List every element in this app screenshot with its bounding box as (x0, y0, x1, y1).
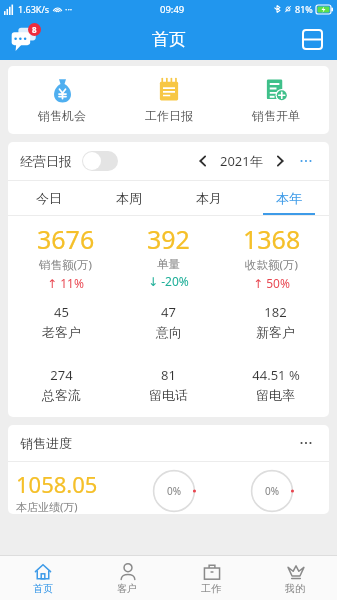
staticText: 销售机会 (38, 108, 86, 123)
staticText: 本月 (196, 190, 222, 206)
button[interactable]: Next year (269, 150, 291, 172)
staticText: ↑ 50% (253, 275, 290, 291)
staticText: 意向 (156, 324, 182, 340)
button[interactable]: 今日 (8, 181, 89, 215)
staticText: 本年 (276, 190, 302, 206)
staticText: 81 (161, 366, 176, 384)
staticText: 274 (50, 366, 73, 384)
staticText: 工作 (201, 582, 221, 595)
staticText: 留电话 (149, 387, 188, 403)
staticText: 首页 (152, 29, 186, 50)
staticText: 本周 (116, 190, 142, 206)
button[interactable]: 392 (117, 222, 220, 289)
staticText: ↓ -20% (148, 273, 189, 289)
staticText: 销售进度 (20, 435, 72, 451)
button[interactable]: 本周 (89, 181, 169, 215)
staticText: 销售额(万) (39, 257, 92, 273)
staticText: 工作日报 (145, 108, 193, 123)
button[interactable]: 我的 (253, 556, 337, 600)
button[interactable]: 47 (115, 303, 222, 340)
button[interactable]: Previous year (192, 150, 214, 172)
staticText: 1058.05 (16, 469, 98, 499)
staticText: 客户 (117, 582, 137, 595)
staticText: 销售开单 (252, 108, 300, 123)
button[interactable]: Messages (6, 21, 42, 57)
button[interactable]: More options (295, 432, 317, 454)
staticText: 经营日报 (20, 153, 72, 169)
button[interactable]: More options (295, 150, 317, 172)
staticText: 1.63K/s (18, 3, 50, 15)
staticText: ··· (65, 3, 73, 15)
staticText: 总客流 (42, 387, 81, 403)
staticText: 2021年 (220, 152, 263, 170)
button[interactable]: 3676 (14, 222, 117, 291)
button[interactable]: 1368 (220, 222, 323, 291)
button[interactable]: 本月 (169, 181, 249, 215)
staticText: 留电率 (256, 387, 295, 403)
button[interactable]: 首页 (0, 556, 85, 600)
button[interactable]: 工作 (169, 556, 253, 600)
button[interactable]: 本年 (249, 181, 329, 215)
button[interactable]: 44.51 % (222, 366, 329, 403)
staticText: 45 (54, 303, 69, 321)
staticText: 44.51 % (252, 366, 300, 384)
button[interactable]: 工作日报 (115, 66, 222, 134)
button[interactable]: 81 (115, 366, 222, 403)
button[interactable]: Toggle daily report (82, 151, 118, 171)
button[interactable]: 销售机会 (8, 66, 115, 134)
button[interactable]: 销售开单 (222, 66, 329, 134)
staticText: 收款额(万) (245, 257, 298, 273)
staticText: 09:49 (160, 3, 185, 16)
staticText: 新客户 (256, 324, 295, 340)
staticText: ↑ 11% (47, 275, 84, 291)
button[interactable]: 45 (8, 303, 115, 340)
staticText: 1368 (243, 222, 301, 256)
staticText: 47 (161, 303, 176, 321)
staticText: 老客户 (42, 324, 81, 340)
staticText: 392 (147, 222, 190, 256)
staticText: 3676 (37, 222, 95, 256)
button[interactable]: 274 (8, 366, 115, 403)
staticText: 182 (264, 303, 287, 321)
staticText: 单量 (157, 257, 180, 271)
staticText: 首页 (33, 582, 53, 595)
staticText: 今日 (36, 190, 62, 206)
button[interactable]: 182 (222, 303, 329, 340)
staticText: 0% (265, 484, 280, 498)
staticText: 0% (167, 484, 182, 498)
staticText: 我的 (285, 582, 305, 595)
button[interactable]: Scan (297, 24, 327, 54)
staticText: 8 (32, 24, 37, 35)
staticText: 本店业绩(万) (16, 499, 78, 514)
button[interactable]: 客户 (85, 556, 169, 600)
staticText: 81% (295, 3, 313, 15)
